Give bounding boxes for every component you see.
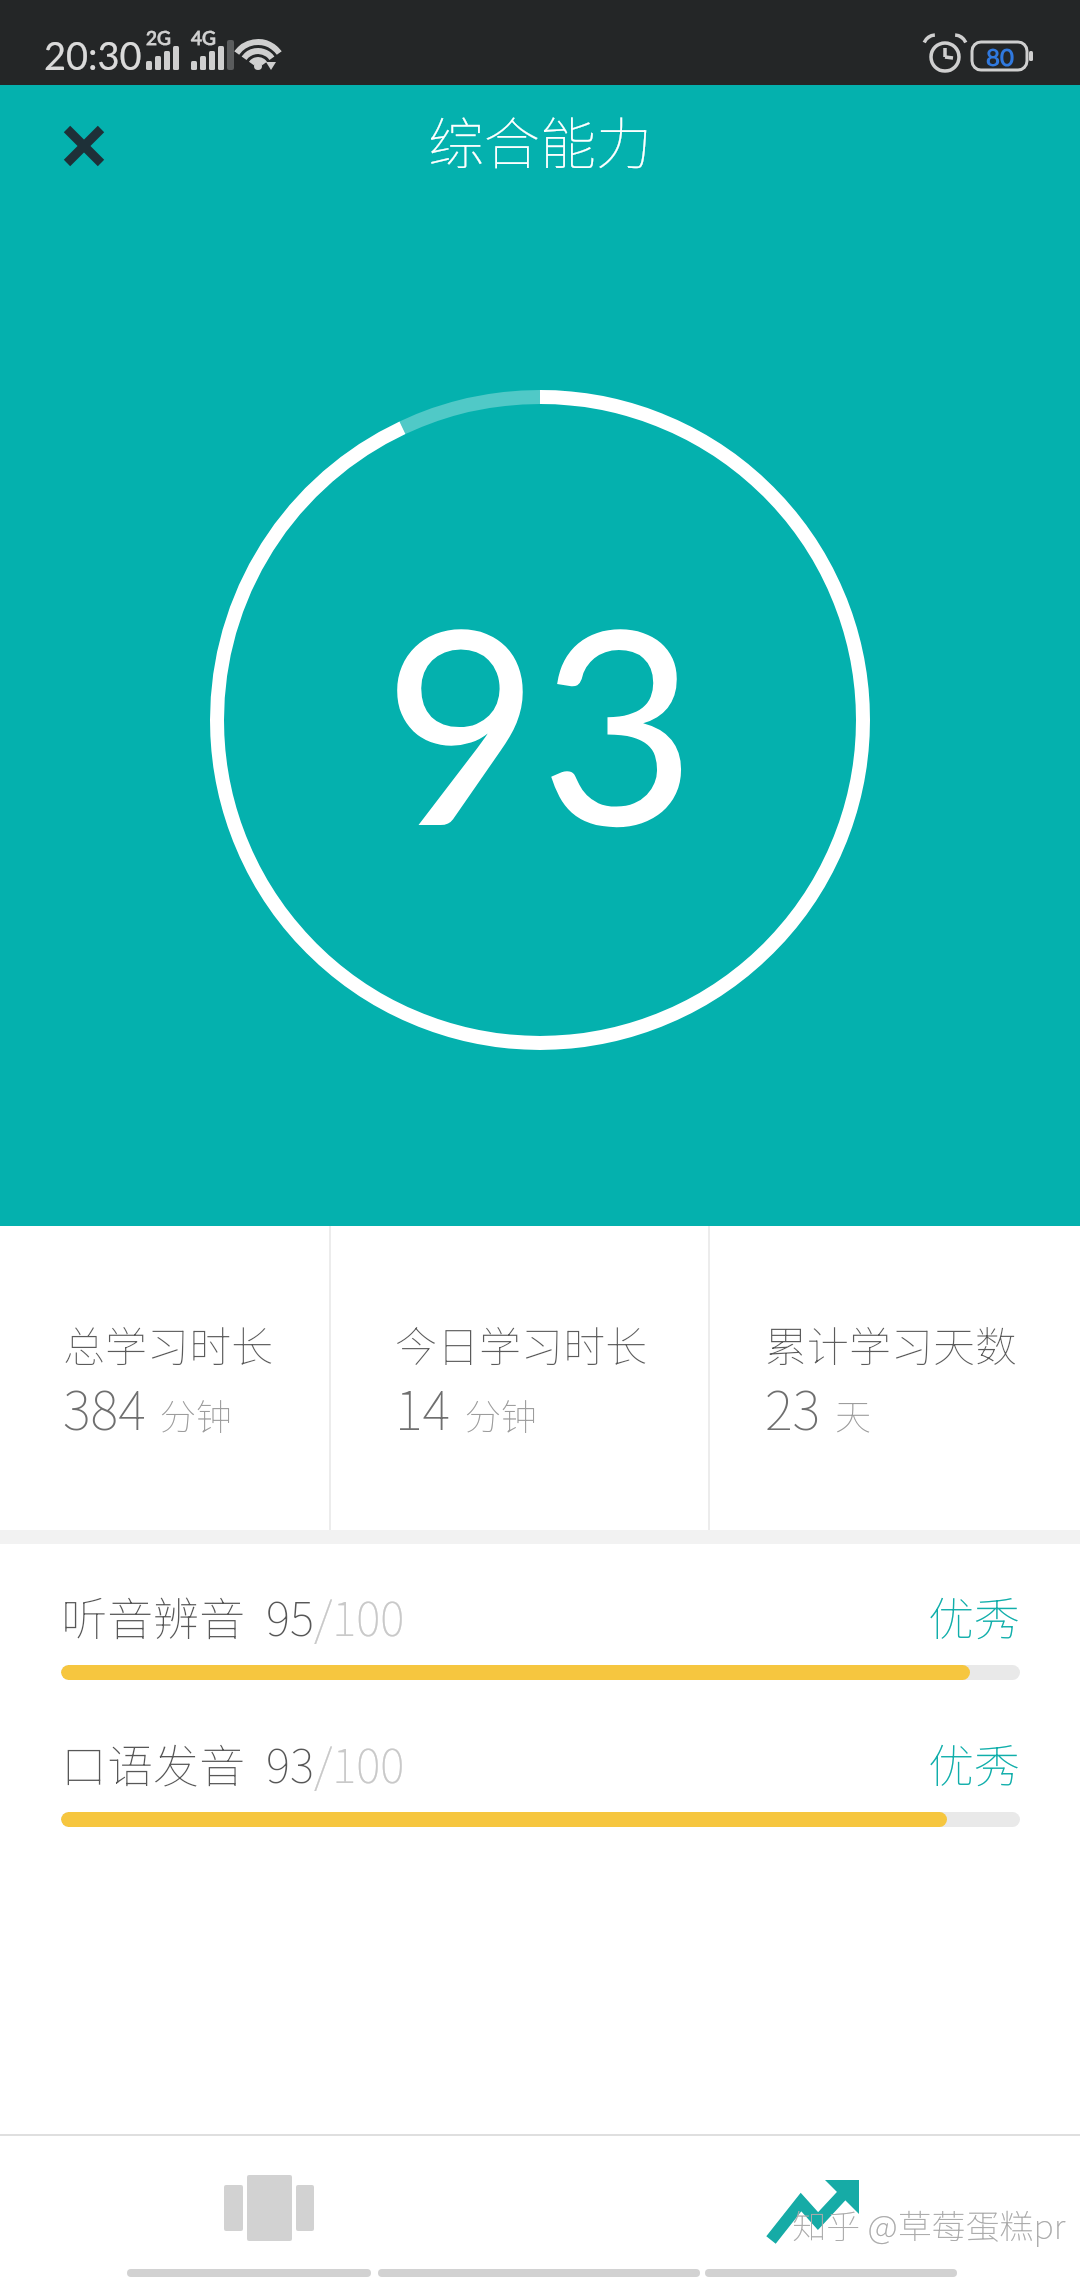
staticText: 优秀 <box>928 1583 1020 1650</box>
staticText: /100 <box>314 1583 405 1650</box>
staticText: 综合能力 <box>428 99 652 179</box>
staticText: 93 <box>383 559 697 883</box>
staticText: 23 <box>765 1369 821 1446</box>
staticText: 80 <box>986 42 1014 71</box>
staticText: 384 <box>63 1369 146 1446</box>
staticText: 总学习时长 <box>63 1313 274 1374</box>
button[interactable]: 听音辨音 <box>61 1583 1020 1693</box>
staticText: 93 <box>266 1730 314 1797</box>
staticText: 听音辨音 <box>61 1583 266 1650</box>
staticText: 知乎 @草莓蛋糕pr <box>792 2200 1066 2249</box>
staticText: 天 <box>835 1388 872 1440</box>
staticText: 95 <box>266 1583 314 1650</box>
button[interactable] <box>206 2144 334 2272</box>
button[interactable]: 口语发音 <box>61 1730 1020 1840</box>
button[interactable] <box>48 110 120 182</box>
staticText: 口语发音 <box>61 1730 266 1797</box>
staticText: 20:30 <box>44 32 142 78</box>
staticText: 分钟 <box>160 1388 233 1440</box>
staticText: 今日学习时长 <box>395 1313 648 1374</box>
staticText: 4G <box>191 26 216 49</box>
staticText: 优秀 <box>928 1730 1020 1797</box>
staticText: 2G <box>146 26 171 49</box>
staticText: /100 <box>314 1730 405 1797</box>
staticText: 累计学习天数 <box>765 1313 1018 1374</box>
button[interactable] <box>750 2148 878 2276</box>
staticText: 分钟 <box>465 1388 538 1440</box>
staticText: 14 <box>395 1369 451 1446</box>
